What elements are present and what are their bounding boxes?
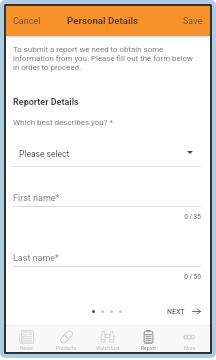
staticText: News — [20, 345, 33, 351]
button[interactable]: Report — [128, 326, 169, 352]
staticText: NEXT — [167, 308, 185, 316]
button[interactable]: NEXT — [167, 307, 201, 316]
button[interactable]: First name* — [13, 193, 201, 218]
staticText: Products — [56, 345, 77, 351]
staticText: More — [184, 345, 196, 351]
button[interactable]: Cancel — [6, 7, 48, 36]
staticText: 0 / 50 — [13, 273, 201, 281]
staticText: Save — [183, 16, 203, 27]
button[interactable]: Watch List — [87, 326, 128, 352]
staticText: Please select — [19, 149, 70, 159]
staticText: 0 / 35 — [13, 213, 201, 221]
button[interactable]: Save — [176, 7, 210, 36]
staticText: Personal Details — [67, 15, 139, 26]
staticText: Reporter Details — [13, 97, 79, 108]
staticText: Last name* — [13, 253, 59, 264]
button[interactable]: Last name* — [13, 253, 201, 278]
staticText: To submit a report we need to obtain som… — [13, 45, 193, 72]
staticText: Which best describes you? * — [13, 118, 113, 127]
button[interactable]: News — [6, 326, 46, 352]
button[interactable]: More — [169, 326, 210, 352]
staticText: First name* — [13, 193, 60, 204]
button[interactable]: Please select — [13, 148, 201, 167]
button[interactable]: Products — [46, 326, 87, 352]
staticText: Report — [141, 345, 156, 351]
staticText: Watch List — [96, 345, 120, 351]
staticText: Cancel — [13, 16, 41, 27]
